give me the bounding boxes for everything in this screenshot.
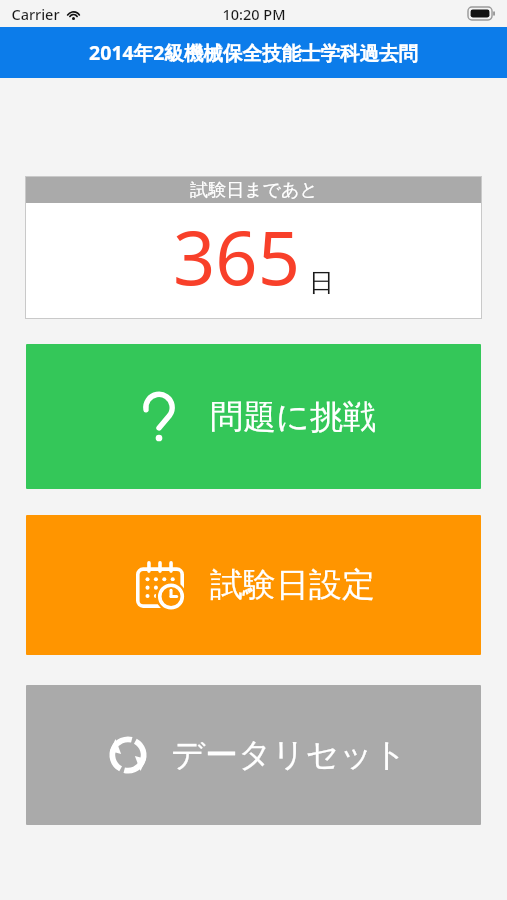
- button[interactable]: 試験日設定: [26, 515, 481, 655]
- staticText: 2014年2級機械保全技能士学科過去問: [89, 39, 418, 66]
- staticText: データリセット: [171, 734, 407, 776]
- staticText: 10:20 PM: [222, 4, 286, 24]
- staticText: 日: [309, 267, 334, 298]
- staticText: 365: [173, 206, 300, 307]
- staticText: 試験日まであと: [190, 179, 318, 202]
- button[interactable]: データリセット: [26, 685, 481, 825]
- staticText: 問題に挑戦: [210, 396, 376, 438]
- staticText: Carrier: [11, 4, 60, 24]
- staticText: 試験日設定: [210, 564, 375, 606]
- button[interactable]: 問題に挑戦: [26, 344, 481, 489]
